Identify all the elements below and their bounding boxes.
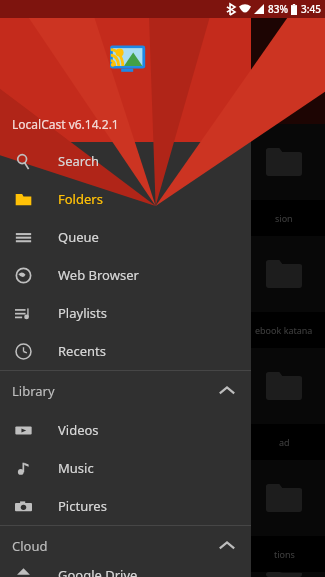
other: Collapse Library bbox=[215, 379, 239, 403]
button[interactable]: Pictures bbox=[0, 487, 251, 525]
button[interactable]: Library bbox=[0, 371, 251, 411]
button[interactable]: Folders bbox=[0, 180, 251, 218]
staticText: tions bbox=[30, 548, 51, 560]
button[interactable]: Cloud bbox=[0, 526, 251, 566]
staticText: Web Browser bbox=[58, 266, 139, 284]
staticText: 3:45 bbox=[301, 2, 321, 16]
button[interactable]: Recents bbox=[0, 332, 251, 370]
staticText: ad bbox=[279, 436, 290, 448]
button[interactable]: Videos bbox=[0, 411, 251, 449]
staticText: sion bbox=[275, 212, 293, 224]
staticText: ebook katana bbox=[255, 324, 313, 336]
staticText: Pictures bbox=[58, 497, 107, 515]
staticText: Cloud bbox=[12, 537, 48, 555]
staticText: Music bbox=[58, 459, 94, 477]
button[interactable]: Queue bbox=[0, 218, 251, 256]
button[interactable]: Search bbox=[0, 142, 251, 180]
staticText: Folders bbox=[58, 190, 103, 208]
staticText: tions bbox=[274, 548, 295, 560]
button[interactable]: Web Browser bbox=[0, 256, 251, 294]
other: Collapse Cloud bbox=[215, 534, 239, 558]
button[interactable]: Music bbox=[0, 449, 251, 487]
staticText: Library bbox=[12, 382, 55, 400]
staticText: Recents bbox=[58, 342, 106, 360]
button[interactable]: Playlists bbox=[0, 294, 251, 332]
staticText: 83% bbox=[268, 2, 288, 16]
staticText: Google Drive bbox=[58, 566, 138, 577]
button[interactable]: Google Drive bbox=[0, 566, 251, 577]
staticText: Videos bbox=[58, 421, 99, 439]
staticText: Queue bbox=[58, 228, 99, 246]
staticText: LocalCast v6.14.2.1 bbox=[12, 116, 119, 132]
staticText: Playlists bbox=[58, 304, 107, 322]
staticText: Search bbox=[58, 152, 100, 170]
